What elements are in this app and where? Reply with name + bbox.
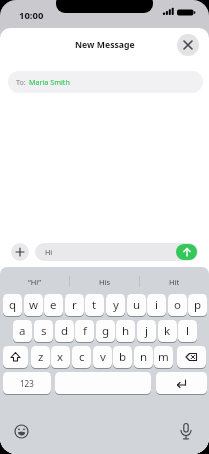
staticText: d bbox=[61, 323, 69, 339]
button[interactable]: g bbox=[96, 320, 115, 342]
button[interactable]: Hit bbox=[140, 273, 209, 290]
button[interactable]: n bbox=[134, 346, 153, 368]
staticText: f bbox=[83, 323, 87, 339]
staticText: k bbox=[164, 323, 171, 339]
staticText: h bbox=[122, 323, 130, 339]
button[interactable]: l bbox=[178, 320, 197, 342]
staticText: Hit bbox=[169, 277, 180, 287]
staticText: Maria Smith bbox=[29, 77, 70, 87]
staticText: y bbox=[113, 297, 119, 313]
staticText: v bbox=[100, 349, 106, 365]
staticText: 123 bbox=[20, 378, 34, 389]
button[interactable]: To: bbox=[8, 71, 203, 93]
button[interactable]: v bbox=[93, 346, 112, 368]
button[interactable] bbox=[177, 34, 199, 56]
button[interactable]: x bbox=[51, 346, 70, 368]
button[interactable]: o bbox=[168, 294, 187, 316]
button[interactable] bbox=[176, 244, 197, 260]
button[interactable]: u bbox=[127, 294, 146, 316]
staticText: p bbox=[194, 297, 202, 313]
button[interactable]: t bbox=[85, 294, 104, 316]
staticText: Hi bbox=[45, 247, 53, 257]
staticText: To: bbox=[16, 77, 26, 87]
staticText: a bbox=[19, 323, 26, 339]
button[interactable]: c bbox=[72, 346, 91, 368]
staticText: 10:00 bbox=[19, 9, 44, 22]
button[interactable] bbox=[3, 346, 28, 368]
button[interactable]: y bbox=[106, 294, 125, 316]
button[interactable]: e bbox=[44, 294, 63, 316]
button[interactable] bbox=[11, 243, 29, 261]
button[interactable]: “Hi” bbox=[0, 273, 69, 290]
staticText: t bbox=[92, 297, 97, 313]
staticText: g bbox=[102, 323, 110, 339]
staticText: z bbox=[38, 349, 44, 365]
button[interactable]: k bbox=[158, 320, 177, 342]
staticText: s bbox=[41, 323, 47, 339]
staticText: b bbox=[119, 349, 127, 365]
staticText: His bbox=[99, 277, 111, 287]
button[interactable]: h bbox=[116, 320, 135, 342]
button[interactable]: w bbox=[24, 294, 43, 316]
staticText: x bbox=[57, 349, 64, 365]
staticText: q bbox=[9, 297, 17, 313]
staticText: n bbox=[140, 349, 148, 365]
staticText: j bbox=[145, 323, 148, 339]
staticText: w bbox=[29, 297, 39, 313]
button[interactable]: p bbox=[188, 294, 207, 316]
button[interactable]: b bbox=[113, 346, 132, 368]
button[interactable] bbox=[55, 372, 151, 394]
button[interactable]: m bbox=[154, 346, 173, 368]
button[interactable] bbox=[156, 372, 207, 394]
staticText: r bbox=[72, 297, 77, 313]
button[interactable]: q bbox=[3, 294, 22, 316]
button[interactable]: r bbox=[65, 294, 84, 316]
button[interactable]: s bbox=[34, 320, 53, 342]
button[interactable]: f bbox=[75, 320, 94, 342]
button[interactable] bbox=[3, 372, 51, 394]
staticText: l bbox=[186, 323, 189, 339]
staticText: i bbox=[155, 297, 158, 313]
button[interactable]: z bbox=[31, 346, 50, 368]
button[interactable]: i bbox=[147, 294, 166, 316]
button[interactable]: d bbox=[55, 320, 74, 342]
button[interactable]: Hi bbox=[35, 243, 198, 261]
staticText: m bbox=[158, 349, 169, 365]
button[interactable]: a bbox=[13, 320, 32, 342]
staticText: e bbox=[50, 297, 57, 313]
staticText: c bbox=[79, 349, 85, 365]
button[interactable] bbox=[177, 346, 206, 368]
button[interactable]: j bbox=[137, 320, 156, 342]
staticText: o bbox=[174, 297, 181, 313]
staticText: “Hi” bbox=[28, 277, 41, 287]
staticText: u bbox=[133, 297, 141, 313]
button[interactable] bbox=[14, 424, 29, 439]
staticText: New Message bbox=[75, 39, 135, 51]
button[interactable]: His bbox=[70, 273, 139, 290]
button[interactable] bbox=[179, 423, 193, 440]
